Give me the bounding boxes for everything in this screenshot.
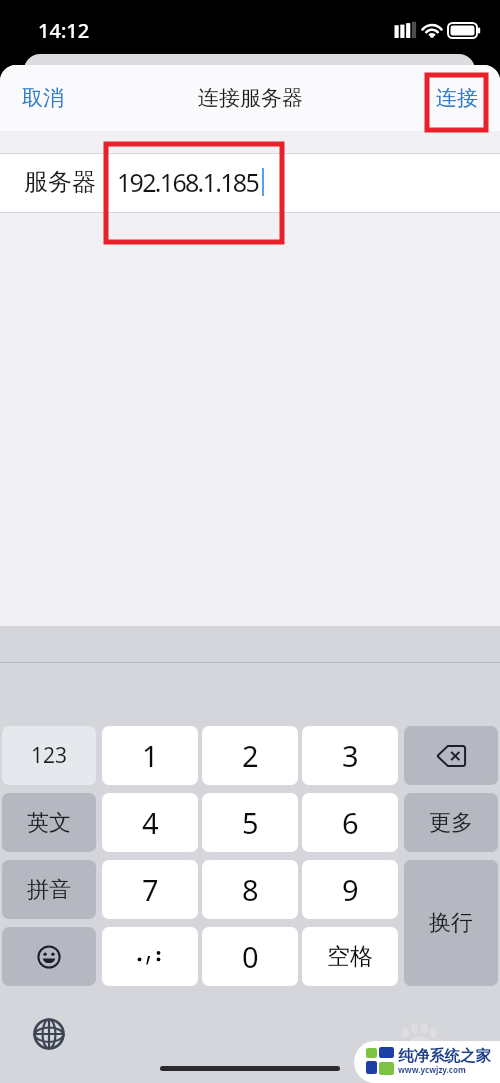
button[interactable]: 取消 <box>0 73 86 123</box>
button[interactable]: 9 <box>302 860 398 919</box>
staticText: 空格 <box>327 942 373 971</box>
button[interactable]: 英文 <box>2 793 96 852</box>
staticText: 连接 <box>436 85 478 111</box>
staticText: 8 <box>242 870 259 909</box>
button[interactable]: Emoji <box>2 927 96 986</box>
staticText: 取消 <box>22 85 64 111</box>
staticText: 192.168.1.185 <box>117 165 259 199</box>
button[interactable]: 7 <box>102 860 198 919</box>
staticText: 换行 <box>429 909 473 937</box>
staticText: 0 <box>242 937 259 976</box>
button[interactable]: 换行 <box>404 860 498 986</box>
staticText: 9 <box>342 870 359 909</box>
button[interactable]: 3 <box>302 726 398 785</box>
staticText: 更多 <box>429 809 473 837</box>
staticText: www.ycwjzy.com <box>398 1064 466 1075</box>
button[interactable]: 拼音 <box>2 860 96 919</box>
button[interactable]: 5 <box>202 793 298 852</box>
staticText: 6 <box>342 803 359 842</box>
button[interactable]: 2 <box>202 726 298 785</box>
staticText: 5 <box>242 803 259 842</box>
staticText: 2 <box>242 736 259 775</box>
button[interactable]: 空格 <box>302 927 398 986</box>
staticText: 拼音 <box>27 876 71 904</box>
button[interactable]: Backspace <box>404 726 498 785</box>
staticText: 1 <box>142 736 159 775</box>
button[interactable]: 8 <box>202 860 298 919</box>
staticText: 连接服务器 <box>198 85 303 111</box>
button[interactable]: Switch keyboard <box>28 1013 70 1055</box>
staticText: 4 <box>142 803 159 842</box>
button[interactable]: 6 <box>302 793 398 852</box>
button[interactable]: 4 <box>102 793 198 852</box>
button[interactable]: 123 <box>2 726 96 785</box>
staticText: 14:12 <box>38 17 90 44</box>
button[interactable]: 1 <box>102 726 198 785</box>
staticText: 英文 <box>27 809 71 837</box>
button[interactable]: Punctuation <box>102 927 198 986</box>
staticText: 服务器 <box>24 167 96 197</box>
button[interactable]: 服务器 <box>0 154 500 212</box>
button[interactable]: 0 <box>202 927 298 986</box>
button[interactable]: 连接 <box>414 73 500 123</box>
staticText: 纯净系统之家 <box>398 1046 491 1066</box>
staticText: 123 <box>31 741 68 770</box>
staticText: 7 <box>142 870 159 909</box>
button[interactable]: 更多 <box>404 793 498 852</box>
staticText: 3 <box>342 736 359 775</box>
